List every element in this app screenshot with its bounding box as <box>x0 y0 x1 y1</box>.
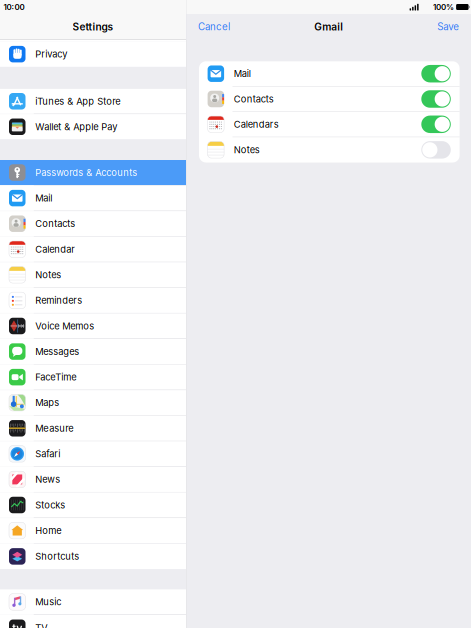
staticText: Maps <box>35 397 59 408</box>
button[interactable]: Notes <box>199 137 460 162</box>
staticText: Music <box>35 596 61 608</box>
button[interactable]: Measure <box>0 416 186 441</box>
button[interactable]: Music <box>0 589 186 615</box>
staticText: Voice Memos <box>35 320 94 332</box>
button[interactable]: Safari <box>0 441 186 467</box>
staticText: Wallet & Apple Pay <box>35 121 117 132</box>
staticText: Contacts <box>234 93 274 105</box>
staticText: Safari <box>35 448 60 459</box>
staticText: Calendars <box>234 119 279 130</box>
staticText: Contacts <box>35 218 75 229</box>
staticText: Reminders <box>35 295 82 306</box>
button[interactable]: Reminders <box>0 288 186 313</box>
button[interactable]: Save <box>433 16 463 38</box>
button[interactable]: tv <box>0 615 186 628</box>
staticText: FaceTime <box>35 371 76 383</box>
button[interactable]: Cancel <box>194 16 234 38</box>
staticText: Save <box>437 21 459 33</box>
button[interactable]: Stocks <box>0 492 186 518</box>
button[interactable]: Mail <box>0 186 186 211</box>
staticText: TV <box>35 622 47 628</box>
button[interactable]: Voice Memos <box>0 313 186 339</box>
button[interactable]: Contacts <box>0 211 186 237</box>
staticText: Messages <box>35 346 79 357</box>
button[interactable]: Calendars <box>199 112 460 137</box>
button[interactable]: Notes <box>0 262 186 288</box>
staticText: Gmail <box>314 21 343 33</box>
button[interactable]: FaceTime <box>0 365 186 390</box>
staticText: Stocks <box>35 499 65 511</box>
staticText: Cancel <box>198 21 230 33</box>
staticText: Notes <box>234 144 260 155</box>
staticText: 100% <box>433 2 454 12</box>
button[interactable]: Mail <box>199 61 460 87</box>
button[interactable]: Maps <box>0 390 186 416</box>
staticText: iTunes & App Store <box>35 96 120 107</box>
button[interactable]: Privacy <box>0 41 186 67</box>
staticText: Mail <box>35 192 52 204</box>
staticText: Home <box>35 525 61 536</box>
staticText: News <box>35 474 60 485</box>
button[interactable]: iTunes & App Store <box>0 89 186 114</box>
button[interactable]: Passwords & Accounts <box>0 160 186 186</box>
button[interactable]: Shortcuts <box>0 544 186 569</box>
staticText: Mail <box>234 68 251 79</box>
staticText: Settings <box>72 21 113 33</box>
staticText: Passwords & Accounts <box>35 167 137 178</box>
staticText: Privacy <box>35 48 67 60</box>
staticText: Measure <box>35 423 73 434</box>
staticText: Shortcuts <box>35 551 79 562</box>
button[interactable]: Home <box>0 518 186 544</box>
button[interactable]: Messages <box>0 339 186 365</box>
staticText: Calendar <box>35 244 75 255</box>
staticText: Notes <box>35 269 61 280</box>
button[interactable]: Calendar <box>0 237 186 262</box>
staticText: tv <box>12 621 22 628</box>
button[interactable]: News <box>0 467 186 492</box>
button[interactable]: Contacts <box>199 87 460 112</box>
staticText: 10:00 <box>3 2 24 12</box>
button[interactable]: Wallet & Apple Pay <box>0 114 186 139</box>
